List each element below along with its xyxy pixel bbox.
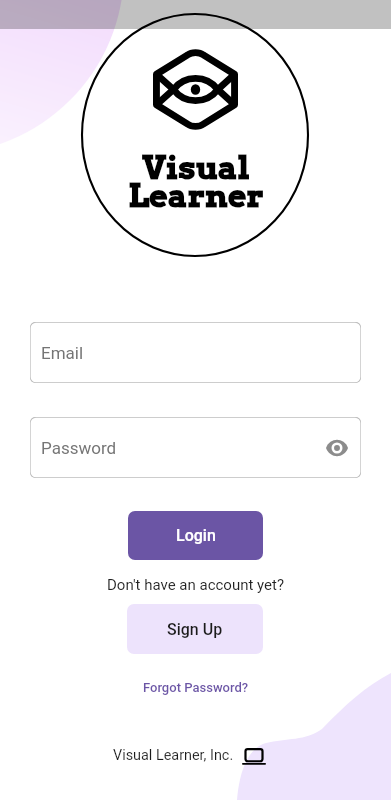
staticText: Visual Learner, Inc.: [113, 747, 234, 764]
button[interactable]: Show password: [322, 435, 352, 461]
staticText: Learner: [82, 176, 310, 215]
staticText: Email: [41, 343, 84, 363]
staticText: Sign Up: [167, 620, 223, 639]
button[interactable]: Sign Up: [127, 604, 263, 654]
staticText: Don't have an account yet?: [0, 576, 391, 594]
button[interactable]: Forgot Password?: [0, 674, 391, 700]
button[interactable]: Login: [128, 511, 263, 560]
staticText: Login: [176, 526, 216, 545]
staticText: Password: [41, 438, 117, 458]
staticText: Forgot Password?: [143, 680, 249, 695]
button[interactable]: Email: [30, 322, 361, 383]
staticText: Visual: [82, 148, 310, 187]
button[interactable]: Password: [30, 417, 361, 478]
